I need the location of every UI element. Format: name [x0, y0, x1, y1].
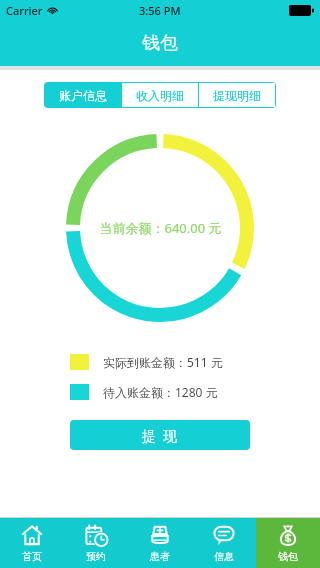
staticText: 提 现 — [142, 426, 178, 445]
staticText: 3:56 PM — [139, 3, 181, 18]
button[interactable]: 提 现 — [70, 420, 250, 450]
staticText: 信息 — [214, 550, 234, 563]
button[interactable]: 钱包 — [256, 518, 320, 568]
staticText: Carrier — [6, 3, 43, 18]
staticText: 钱包 — [278, 550, 298, 563]
staticText: 实际到账金额：511 元 — [103, 354, 223, 370]
staticText: 待入账金额：1280 元 — [103, 384, 218, 400]
button[interactable]: 首页 — [0, 518, 64, 568]
staticText: 钱包 — [142, 32, 178, 55]
staticText: 当前余额：640.00 元 — [99, 219, 222, 237]
staticText: 预约 — [86, 550, 106, 563]
staticText: 账户信息 — [59, 88, 107, 103]
staticText: 首页 — [22, 550, 42, 563]
button[interactable]: 提现明细 — [199, 83, 275, 107]
staticText: 提现明细 — [213, 88, 261, 103]
button[interactable]: 收入明细 — [122, 83, 198, 107]
staticText: 患者 — [150, 550, 170, 563]
button[interactable]: 账户信息 — [45, 83, 121, 107]
staticText: 收入明细 — [136, 88, 184, 103]
button[interactable]: 患者 — [128, 518, 192, 568]
button[interactable]: 信息 — [192, 518, 256, 568]
button[interactable]: 预约 — [64, 518, 128, 568]
